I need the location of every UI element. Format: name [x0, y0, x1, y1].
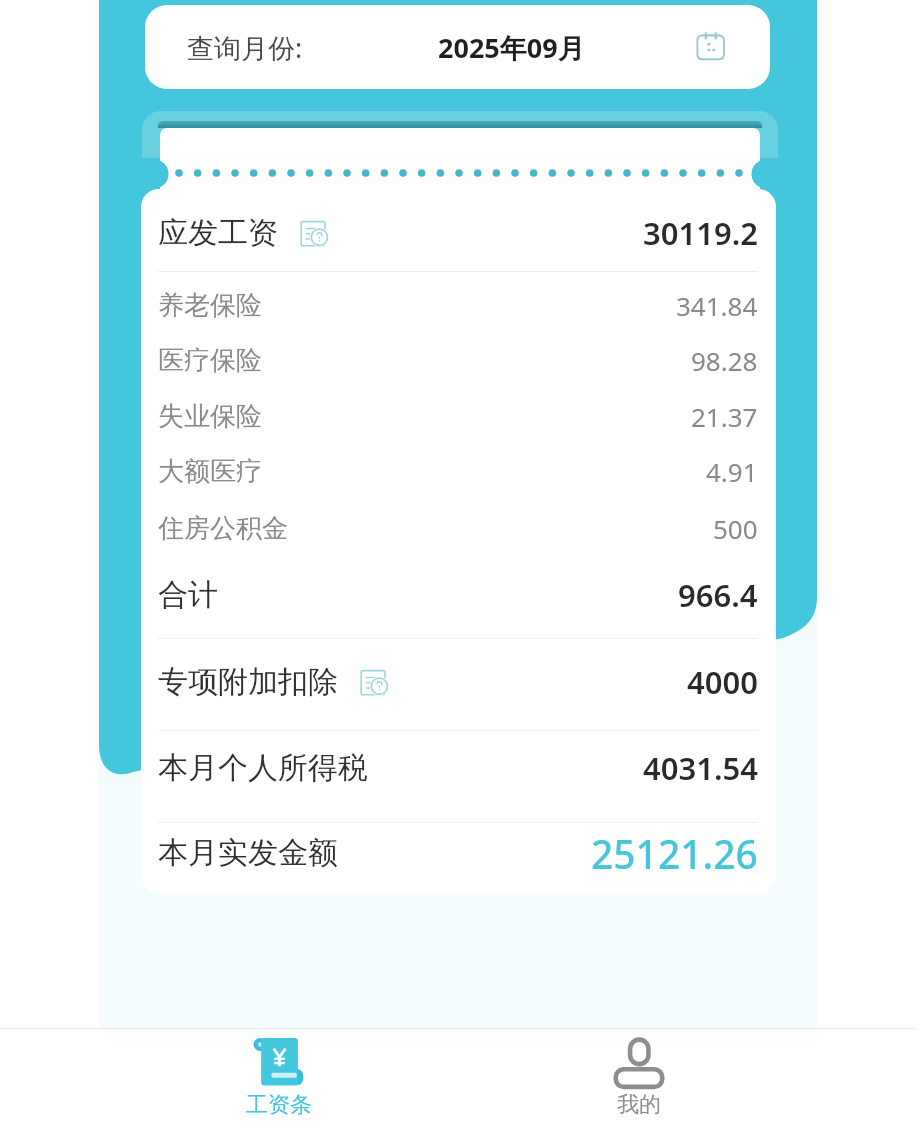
button[interactable]: 养老保险 — [158, 282, 758, 328]
button[interactable]: 查询月份: — [145, 5, 770, 89]
staticText: 98.28 — [691, 343, 758, 378]
button[interactable]: 医疗保险 — [158, 337, 758, 383]
button[interactable]: 本月个人所得税 — [158, 740, 758, 796]
staticText: 2025年09月 — [438, 29, 585, 66]
staticText: 合计 — [158, 576, 218, 614]
staticText: 966.4 — [678, 574, 758, 616]
staticText: 341.84 — [676, 288, 758, 323]
staticText: 养老保险 — [158, 289, 262, 322]
staticText: 4.91 — [706, 454, 758, 489]
staticText: 本月个人所得税 — [158, 749, 368, 787]
staticText: 30119.2 — [643, 212, 758, 254]
staticText: 专项附加扣除 — [158, 663, 338, 701]
staticText: 25121.26 — [591, 827, 758, 880]
other: Details — [360, 668, 389, 697]
staticText: 住房公积金 — [158, 512, 288, 545]
staticText: 4031.54 — [643, 747, 758, 789]
button[interactable]: 合计 — [158, 567, 758, 623]
other: Payslip — [252, 1035, 306, 1089]
button[interactable]: 住房公积金 — [158, 505, 758, 551]
other: Mine — [612, 1035, 666, 1089]
staticText: 大额医疗 — [158, 455, 262, 488]
staticText: 本月实发金额 — [158, 834, 338, 872]
staticText: 500 — [713, 511, 758, 546]
button[interactable]: 本月实发金额 — [158, 825, 758, 881]
button[interactable]: 应发工资 — [158, 205, 758, 261]
staticText: 4000 — [687, 661, 758, 703]
staticText: 应发工资 — [158, 214, 278, 252]
button[interactable]: 大额医疗 — [158, 448, 758, 494]
button[interactable]: 失业保险 — [158, 393, 758, 439]
button[interactable]: 专项附加扣除 — [158, 654, 758, 710]
other: Details — [300, 219, 329, 248]
button[interactable]: Payslip — [224, 1030, 334, 1122]
other: Pick month — [694, 29, 728, 63]
staticText: 失业保险 — [158, 400, 262, 433]
staticText: 我的 — [584, 1091, 694, 1119]
staticText: 21.37 — [691, 399, 758, 434]
staticText: 查询月份: — [187, 29, 303, 66]
staticText: 医疗保险 — [158, 344, 262, 377]
button[interactable]: Mine — [584, 1030, 694, 1122]
staticText: 工资条 — [224, 1091, 334, 1119]
